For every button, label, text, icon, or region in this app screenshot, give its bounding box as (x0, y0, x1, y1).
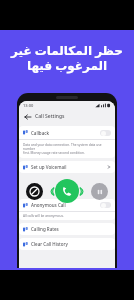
button[interactable]: Block call (26, 183, 43, 200)
staticText: Set up Voicemail (31, 164, 67, 170)
staticText: حظر المكالمات غير المرغوب فيها (11, 42, 123, 73)
button[interactable]: Clear Call History (19, 238, 115, 250)
button[interactable]: Back (23, 112, 32, 121)
staticText: Anonymous Call (31, 202, 66, 208)
button[interactable]: Set up Voicemail (19, 161, 115, 173)
staticText: Callback (31, 130, 49, 136)
button[interactable]: Back (19, 110, 115, 123)
staticText: Data and your data connection. The syste… (23, 143, 111, 155)
staticText: 13:00 (23, 103, 34, 108)
staticText: Calling Rates (31, 226, 59, 232)
button[interactable]: Mute call (91, 183, 108, 200)
button[interactable]: Anonymous Call (19, 199, 115, 220)
button[interactable]: Call (55, 179, 79, 203)
button[interactable] (100, 130, 111, 136)
staticText: Clear Call History (31, 241, 68, 247)
staticText: Call Settings (35, 113, 65, 120)
button[interactable]: Calling Rates (19, 223, 115, 235)
button[interactable] (100, 202, 111, 208)
staticText: All calls will be anonymous. (23, 214, 64, 218)
button[interactable]: Callback (19, 126, 115, 158)
